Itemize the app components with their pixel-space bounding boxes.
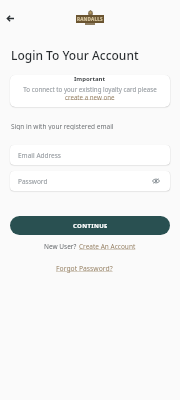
button[interactable]: Create An Account (79, 242, 136, 251)
staticText: New User? (44, 242, 79, 251)
staticText: Password (18, 177, 48, 186)
staticText: CONTINUE (73, 222, 108, 230)
button[interactable]: CONTINUE (10, 216, 170, 235)
button[interactable]: Toggle password visibility (150, 175, 162, 187)
staticText: Login To Your Account (11, 47, 139, 63)
button[interactable]: create a new one (65, 93, 115, 101)
button[interactable]: Forgot Password? (56, 264, 113, 273)
button[interactable]: Back (2, 10, 18, 26)
staticText: To connect to your existing loyalty card… (23, 85, 157, 93)
staticText: Important (74, 75, 106, 83)
staticText: RANDALLS (77, 16, 103, 22)
staticText: Email Address (18, 151, 61, 160)
button[interactable]: Email Address (10, 145, 170, 165)
staticText: Sign in with your registered email (11, 122, 114, 130)
button[interactable]: Password (10, 171, 170, 191)
